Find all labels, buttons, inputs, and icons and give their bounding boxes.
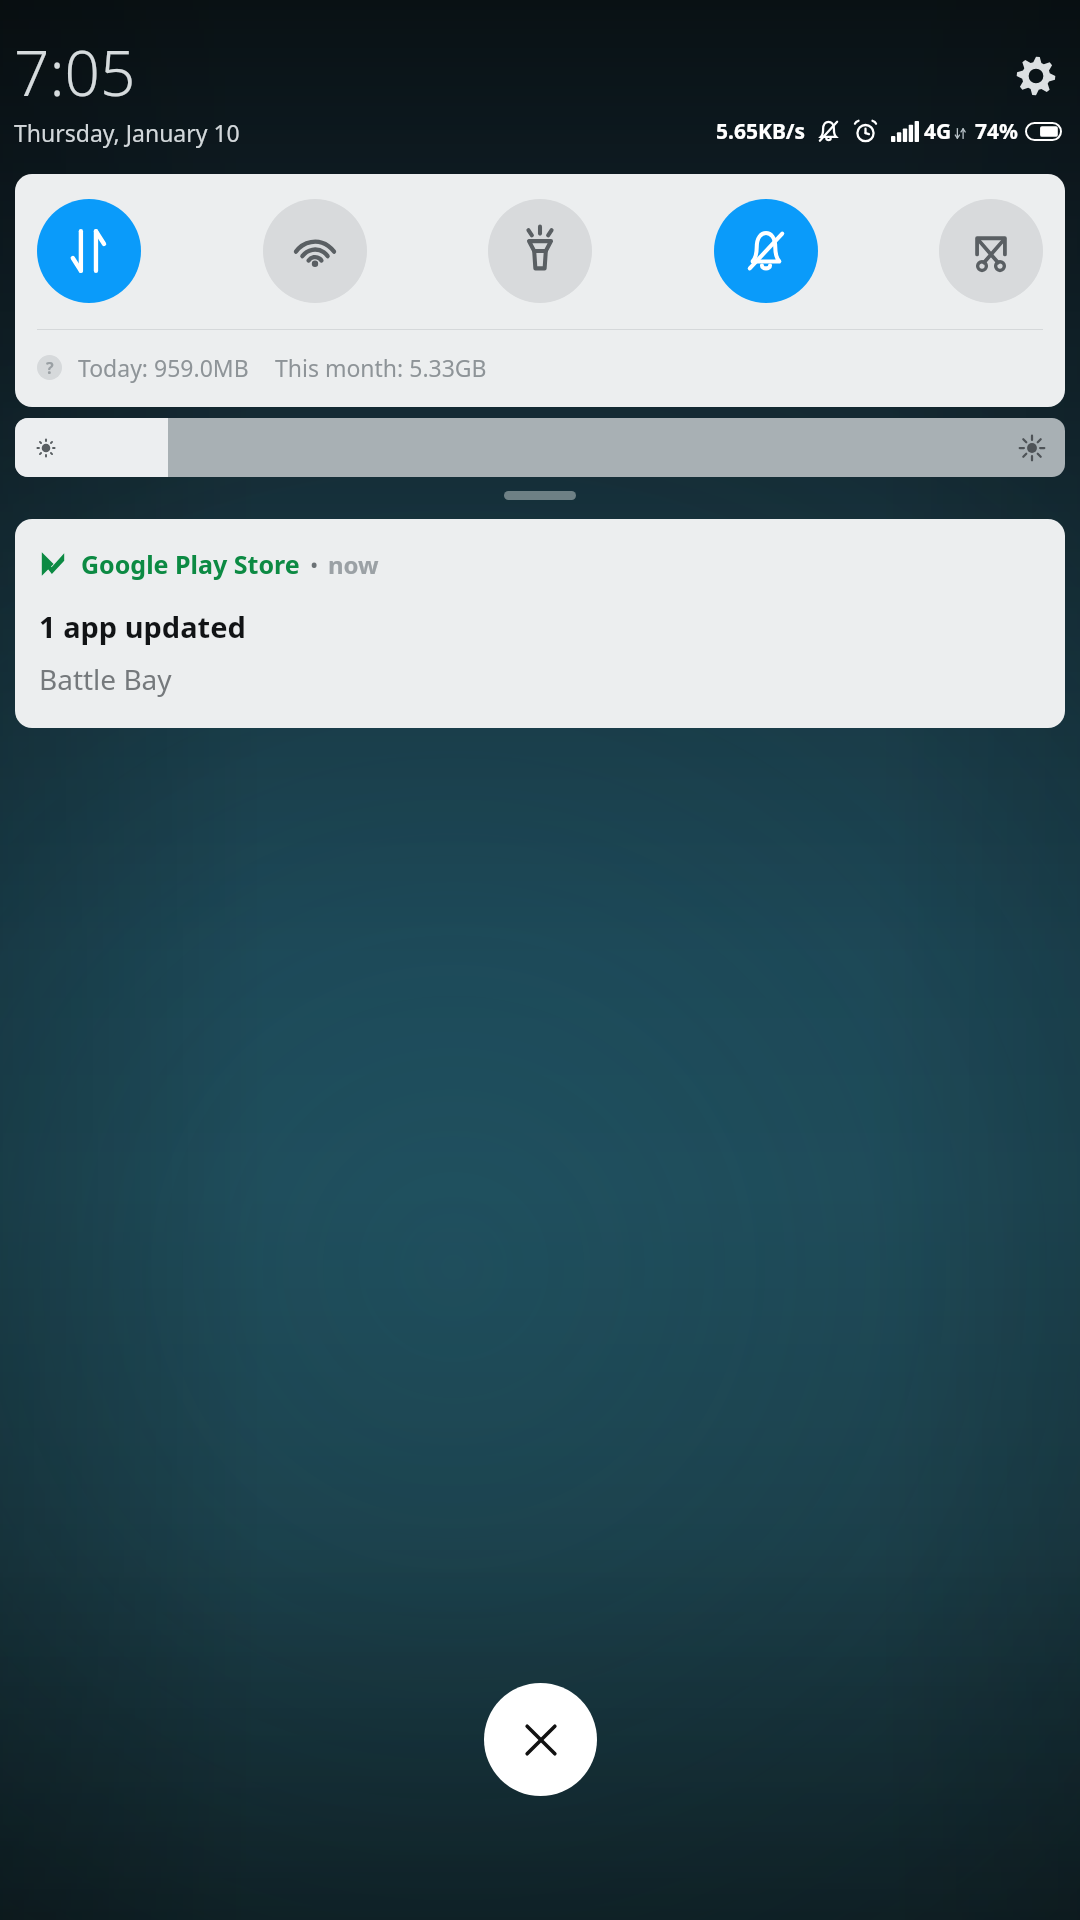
button[interactable]: Flashlight [488, 199, 592, 303]
staticText: 74% [975, 117, 1018, 146]
button[interactable]: Wi-Fi [263, 199, 367, 303]
button[interactable]: Settings [1012, 52, 1060, 100]
staticText: ? [46, 357, 54, 379]
button[interactable]: Google Play Store [15, 519, 1065, 728]
button[interactable]: Mobile data [37, 199, 141, 303]
button[interactable]: Brightness [15, 418, 1065, 477]
button[interactable]: Silent mode [714, 199, 818, 303]
staticText: This month: 5.33GB [275, 352, 487, 383]
staticText: now [328, 548, 379, 581]
staticText: 4G [924, 117, 952, 146]
staticText: 1 app updated [39, 607, 246, 646]
button[interactable]: Expand quick settings [504, 491, 576, 500]
staticText: Google Play Store [81, 547, 300, 581]
staticText: • [310, 549, 319, 579]
staticText: Battle Bay [39, 660, 172, 698]
staticText: 7:05 [14, 30, 136, 114]
button[interactable]: Close notification shade [484, 1683, 597, 1796]
button[interactable]: Screenshot [939, 199, 1043, 303]
staticText: 5.65KB/s [716, 117, 806, 146]
button[interactable]: ? [15, 330, 1065, 407]
staticText: Thursday, January 10 [14, 117, 240, 148]
staticText: Today: 959.0MB [78, 352, 249, 383]
